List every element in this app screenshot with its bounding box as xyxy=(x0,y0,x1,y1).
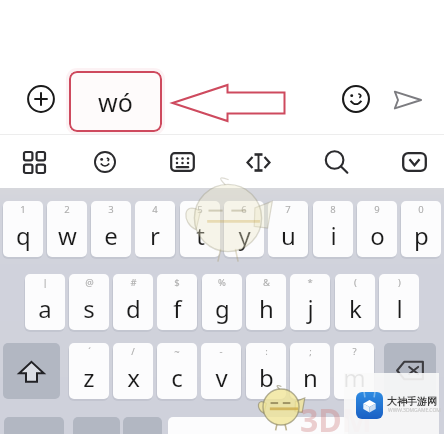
button[interactable]: 1 xyxy=(3,201,43,257)
button[interactable]: - xyxy=(201,343,241,399)
staticText: j xyxy=(307,292,314,325)
staticText: l xyxy=(396,292,403,325)
button[interactable]: Language xyxy=(73,417,120,434)
staticText: % xyxy=(218,276,226,289)
staticText: 3DM xyxy=(300,398,372,434)
button[interactable]: 7 xyxy=(268,201,308,257)
staticText: 大神手游网 xyxy=(387,395,437,408)
staticText: 6 xyxy=(241,203,247,216)
button[interactable]: Keyboard layout xyxy=(160,140,204,184)
button[interactable]: & xyxy=(246,274,286,330)
button[interactable]: 9 xyxy=(357,201,397,257)
button[interactable]: 2 xyxy=(47,201,87,257)
staticText: # xyxy=(130,276,137,289)
button[interactable]: Emoji xyxy=(336,79,376,119)
staticText: 2 xyxy=(64,203,70,216)
button[interactable]: Shift xyxy=(3,343,60,399)
button[interactable]: Search xyxy=(314,140,358,184)
staticText: ) xyxy=(398,276,401,289)
button[interactable]: ~ xyxy=(157,343,197,399)
button[interactable]: Move cursor xyxy=(236,140,280,184)
staticText: 5 xyxy=(197,203,203,216)
button[interactable]: 4 xyxy=(135,201,175,257)
button[interactable]: Apps xyxy=(12,140,56,184)
staticText: 9 xyxy=(374,203,380,216)
button[interactable]: 0 xyxy=(401,201,441,257)
staticText: k xyxy=(349,292,362,325)
button[interactable]: ) xyxy=(379,274,419,330)
staticText: r xyxy=(150,219,160,252)
staticText: n xyxy=(303,361,318,394)
button[interactable]: # xyxy=(113,274,153,330)
staticText: ~ xyxy=(174,345,180,358)
button[interactable]: % xyxy=(202,274,242,330)
button[interactable]: 3 xyxy=(91,201,131,257)
staticText: 7 xyxy=(285,203,291,216)
staticText: 3 xyxy=(108,203,114,216)
button[interactable]: / xyxy=(113,343,153,399)
button[interactable]: ´ xyxy=(69,343,109,399)
staticText: e xyxy=(104,219,118,252)
button[interactable]: ( xyxy=(335,274,375,330)
staticText: 0 xyxy=(418,203,424,216)
button[interactable]: wó xyxy=(69,71,162,132)
staticText: ; xyxy=(309,345,312,358)
staticText: g xyxy=(215,292,230,325)
staticText: c xyxy=(171,361,183,394)
staticText: v xyxy=(215,361,228,394)
staticText: 4 xyxy=(152,203,158,216)
staticText: / xyxy=(131,345,135,358)
button[interactable]: ? xyxy=(334,343,374,399)
button[interactable]: 5 xyxy=(180,201,220,257)
staticText: : xyxy=(265,345,268,358)
staticText: i xyxy=(330,219,337,252)
staticText: 1 xyxy=(20,203,26,216)
button[interactable]: $ xyxy=(157,274,197,330)
staticText: o xyxy=(370,219,385,252)
staticText: | xyxy=(42,276,48,289)
staticText: $ xyxy=(174,276,180,289)
button[interactable]: 6 xyxy=(224,201,264,257)
staticText: * xyxy=(307,276,313,289)
staticText: q xyxy=(16,219,31,252)
button[interactable]: Send xyxy=(387,80,427,120)
button[interactable]: Space xyxy=(168,417,348,434)
button[interactable]: @ xyxy=(69,274,109,330)
staticText: z xyxy=(83,361,95,394)
staticText: u xyxy=(281,219,296,252)
button[interactable]: Hide keyboard xyxy=(392,140,436,184)
staticText: WWW.3DMGAME.COM xyxy=(388,407,441,414)
button[interactable]: 8 xyxy=(313,201,353,257)
staticText: t xyxy=(196,219,205,252)
staticText: x xyxy=(127,361,140,394)
button[interactable]: ; xyxy=(290,343,330,399)
button[interactable]: Add xyxy=(21,79,61,119)
staticText: ´ xyxy=(88,345,91,358)
staticText: 8 xyxy=(330,203,336,216)
button[interactable]: * xyxy=(290,274,330,330)
button[interactable]: Backspace xyxy=(384,343,436,399)
staticText: y xyxy=(238,219,251,252)
staticText: ? xyxy=(352,345,357,358)
staticText: ( xyxy=(354,276,357,289)
staticText: & xyxy=(263,276,270,289)
staticText: @ xyxy=(85,276,94,289)
button[interactable]: | xyxy=(25,274,65,330)
staticText: w xyxy=(58,219,77,252)
button[interactable]: : xyxy=(246,343,286,399)
staticText: - xyxy=(219,345,223,358)
staticText: f xyxy=(173,292,182,325)
button[interactable]: Emoticons xyxy=(83,140,127,184)
button[interactable]: Comma xyxy=(123,417,162,434)
staticText: h xyxy=(259,292,274,325)
staticText: p xyxy=(414,219,429,252)
staticText: b xyxy=(259,361,274,394)
staticText: wó xyxy=(98,85,133,119)
staticText: a xyxy=(38,292,52,325)
staticText: d xyxy=(126,292,141,325)
staticText: m xyxy=(343,361,366,394)
staticText: s xyxy=(83,292,95,325)
